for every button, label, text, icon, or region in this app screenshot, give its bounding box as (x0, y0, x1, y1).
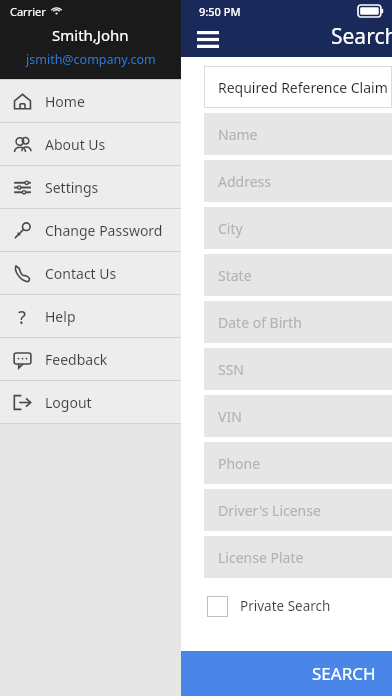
staticText: State (218, 266, 252, 285)
staticText: Settings (45, 178, 99, 197)
button[interactable]: Phone (204, 442, 392, 484)
staticText: Smith,John (52, 25, 129, 45)
staticText: ? (18, 305, 27, 327)
staticText: Change Password (45, 221, 163, 240)
button[interactable]: Name (204, 113, 392, 155)
staticText: SEARCH (312, 662, 376, 685)
staticText: Name (218, 125, 258, 144)
button[interactable]: Home (0, 80, 181, 122)
staticText: City (218, 219, 243, 238)
staticText: Search (331, 22, 392, 51)
staticText: Logout (45, 393, 92, 412)
button[interactable]: Logout (0, 381, 181, 423)
staticText: Address (218, 172, 271, 191)
button[interactable]: Open navigation menu (195, 26, 221, 52)
button[interactable]: Private Search (181, 589, 392, 623)
staticText: 9:50 PM (199, 4, 241, 19)
staticText: Phone (218, 454, 261, 473)
staticText: Carrier (10, 4, 46, 19)
button[interactable]: Driver's License (204, 489, 392, 531)
button[interactable]: City (204, 207, 392, 249)
button[interactable]: ? (0, 295, 181, 337)
staticText: Private Search (240, 597, 331, 615)
staticText: License Plate (218, 548, 304, 567)
staticText: Driver's License (218, 501, 321, 520)
staticText: Date of Birth (218, 313, 302, 332)
button[interactable]: VIN (204, 395, 392, 437)
button[interactable]: State (204, 254, 392, 296)
button[interactable]: Settings (0, 166, 181, 208)
button[interactable]: About Us (0, 123, 181, 165)
staticText: SSN (218, 360, 245, 379)
button[interactable]: Change Password (0, 209, 181, 251)
staticText: About Us (45, 135, 106, 154)
staticText: Help (45, 307, 76, 326)
staticText: Required Reference Claim Number (218, 78, 392, 97)
staticText: VIN (218, 407, 242, 426)
staticText: jsmith@company.com (26, 51, 156, 68)
button[interactable]: Feedback (0, 338, 181, 380)
button[interactable]: Required Reference Claim Number (204, 66, 392, 108)
button[interactable]: Address (204, 160, 392, 202)
staticText: Feedback (45, 350, 108, 369)
button[interactable]: License Plate (204, 536, 392, 578)
button[interactable]: Contact Us (0, 252, 181, 294)
staticText: Contact Us (45, 264, 117, 283)
button[interactable]: SSN (204, 348, 392, 390)
button[interactable]: Date of Birth (204, 301, 392, 343)
button[interactable]: SEARCH (181, 651, 392, 696)
staticText: Home (45, 92, 85, 111)
